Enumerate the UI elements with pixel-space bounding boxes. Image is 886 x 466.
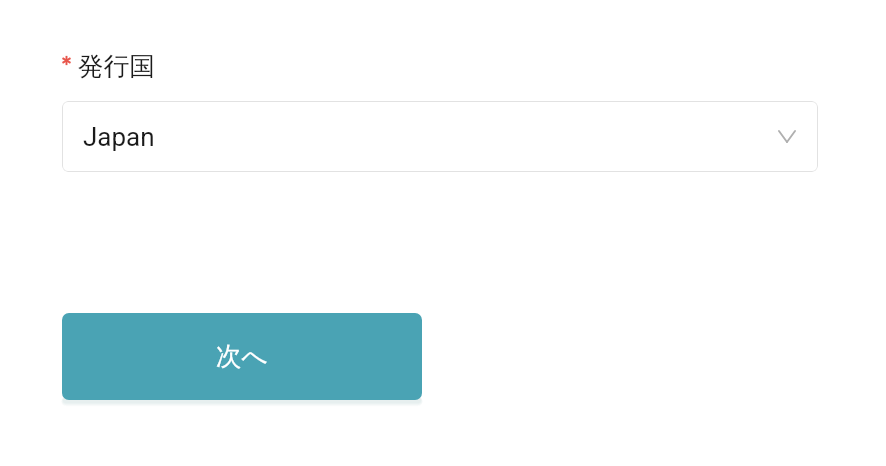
button[interactable]: 次へ — [62, 313, 422, 400]
other: Open country list — [778, 130, 796, 143]
staticText: Japan — [83, 122, 155, 152]
staticText: 発行国 — [78, 50, 155, 82]
button[interactable]: Japan — [62, 101, 818, 172]
staticText: 次へ — [216, 340, 268, 372]
